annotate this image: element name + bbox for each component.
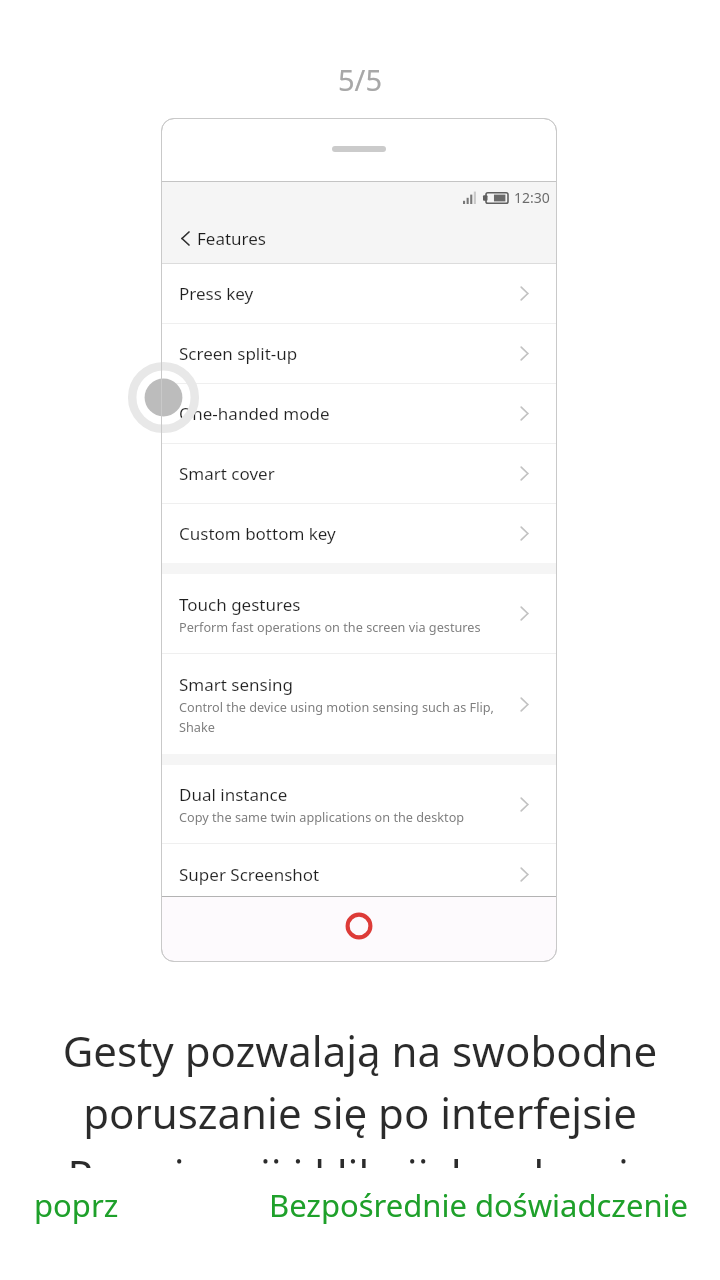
button[interactable]: Press key: [161, 264, 557, 324]
button[interactable]: Touch gestures: [161, 574, 557, 654]
button[interactable]: poprz: [0, 1176, 137, 1234]
button[interactable]: One-handed mode: [161, 384, 557, 444]
staticText: Copy the same twin applications on the d…: [179, 808, 465, 825]
staticText: Screen split-up: [179, 342, 298, 365]
staticText: Perform fast operations on the screen vi…: [179, 618, 481, 635]
staticText: Press key: [179, 282, 254, 305]
staticText: Custom bottom key: [179, 522, 336, 545]
staticText: Touch gestures: [179, 593, 301, 616]
button[interactable]: Back: [161, 213, 285, 263]
staticText: Bezpośrednie doświadczenie: [269, 1184, 689, 1226]
button[interactable]: Screen split-up: [161, 324, 557, 384]
button[interactable]: Home: [161, 897, 557, 962]
staticText: Gesty pozwalają na swobodne poruszanie s…: [40, 1022, 680, 1168]
staticText: 12:30: [514, 188, 550, 207]
staticText: Control the device using motion sensing …: [179, 698, 510, 735]
staticText: Smart cover: [179, 462, 275, 485]
other: Back: [181, 231, 190, 246]
staticText: Features: [197, 227, 267, 250]
staticText: poprz: [34, 1184, 119, 1226]
button[interactable]: Super Screenshot: [161, 844, 557, 896]
staticText: Super Screenshot: [179, 863, 320, 886]
button[interactable]: Custom bottom key: [161, 504, 557, 563]
staticText: 5/5: [338, 60, 382, 99]
button[interactable]: Bezpośrednie doświadczenie: [251, 1176, 720, 1234]
button[interactable]: Dual instance: [161, 765, 557, 844]
staticText: Smart sensing: [179, 673, 294, 696]
staticText: One-handed mode: [179, 402, 330, 425]
button[interactable]: Smart sensing: [161, 654, 557, 754]
button[interactable]: Smart cover: [161, 444, 557, 504]
staticText: Dual instance: [179, 783, 288, 806]
